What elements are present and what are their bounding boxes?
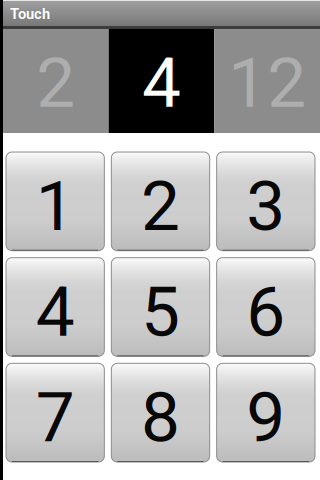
button[interactable]: 4 [6, 258, 104, 356]
staticText: 2 [36, 42, 75, 124]
staticText: 6 [246, 271, 285, 353]
staticText: 4 [36, 271, 75, 353]
staticText: 12 [228, 42, 306, 124]
staticText: 2 [141, 166, 180, 247]
staticText: 8 [141, 377, 180, 458]
button[interactable]: 9 [217, 363, 315, 462]
staticText: 1 [36, 166, 75, 247]
button[interactable]: 7 [6, 363, 104, 462]
button[interactable]: 8 [111, 363, 210, 462]
staticText: Touch [10, 5, 50, 23]
button[interactable]: 6 [217, 258, 315, 356]
staticText: 9 [246, 377, 285, 458]
staticText: 4 [142, 42, 181, 124]
staticText: 7 [36, 377, 75, 458]
staticText: 3 [246, 166, 285, 247]
button[interactable]: 3 [217, 152, 315, 251]
staticText: 5 [141, 271, 180, 353]
button[interactable]: 2 [111, 152, 210, 251]
button[interactable]: 1 [6, 152, 104, 251]
button[interactable]: 5 [111, 258, 210, 356]
